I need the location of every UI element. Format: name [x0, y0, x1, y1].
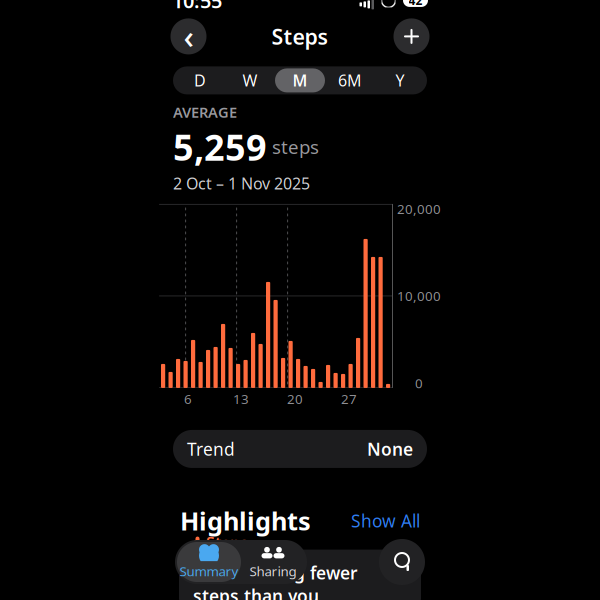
staticText: D: [194, 70, 206, 91]
staticText: 20: [287, 390, 303, 408]
button[interactable]: Summary: [177, 542, 241, 582]
staticText: 2 Oct – 1 Nov 2025: [173, 173, 310, 194]
staticText: Sharing: [249, 562, 296, 580]
staticText: 27: [341, 390, 357, 408]
button[interactable]: M: [275, 66, 325, 94]
button[interactable]: Add Data: [393, 18, 429, 54]
button[interactable]: 6M: [325, 66, 375, 94]
staticText: Steps: [271, 22, 328, 50]
staticText: Y: [395, 70, 404, 91]
staticText: 42: [408, 0, 422, 8]
staticText: 10:55: [172, 0, 222, 14]
button[interactable]: Y: [375, 66, 425, 94]
staticText: Show All: [351, 509, 420, 532]
button[interactable]: Sharing: [241, 542, 305, 582]
staticText: 10,000: [397, 287, 441, 305]
button[interactable]: Show All: [351, 509, 420, 532]
button[interactable]: Steps: [179, 550, 421, 600]
button[interactable]: D: [175, 66, 225, 94]
staticText: Summary: [179, 562, 238, 580]
staticText: Steps: [206, 532, 248, 553]
staticText: M: [292, 70, 307, 91]
button[interactable]: Search: [379, 539, 425, 585]
button[interactable]: Trend: [173, 430, 427, 468]
button[interactable]: Back: [170, 18, 206, 54]
staticText: ‹: [183, 15, 193, 58]
staticText: Highlights: [180, 504, 311, 537]
staticText: W: [242, 70, 257, 91]
staticText: 6: [184, 390, 192, 408]
staticText: 20,000: [397, 200, 441, 218]
staticText: steps: [267, 134, 319, 159]
staticText: 5,259: [173, 123, 267, 171]
staticText: You're taking fewer steps than you: [193, 561, 358, 600]
staticText: 6M: [338, 70, 362, 91]
staticText: 0: [415, 374, 423, 392]
staticText: None: [367, 437, 413, 460]
staticText: AVERAGE: [173, 102, 237, 122]
staticText: Trend: [187, 437, 235, 460]
button[interactable]: W: [225, 66, 275, 94]
staticText: 13: [233, 390, 249, 408]
